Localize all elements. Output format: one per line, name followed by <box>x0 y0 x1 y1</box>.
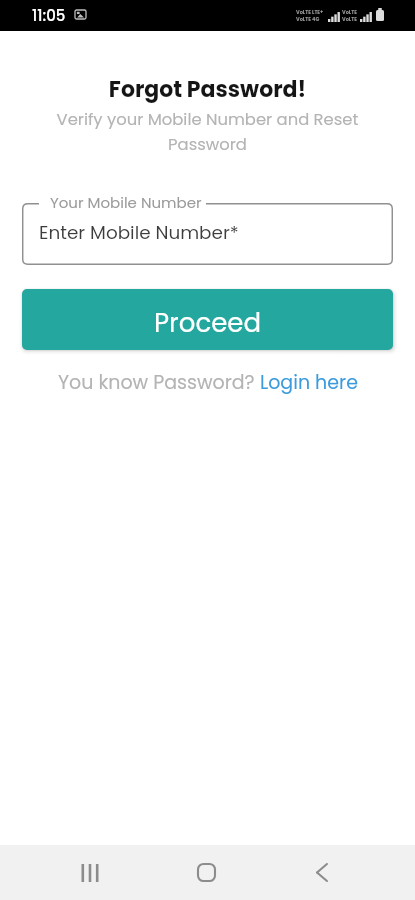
button[interactable]: Recent apps <box>62 845 118 900</box>
staticText: 4G <box>312 16 320 23</box>
staticText: Your Mobile Number <box>50 192 202 213</box>
staticText: Enter Mobile Number* <box>39 220 239 246</box>
staticText: Verify your Mobile Number and Reset Pass… <box>45 108 370 156</box>
staticText: 11:05 <box>32 5 66 26</box>
staticText: Forgot Password! <box>0 74 415 105</box>
staticText: Login here <box>260 369 358 396</box>
button[interactable]: Home <box>178 845 234 900</box>
staticText: LTE+ <box>312 9 324 16</box>
staticText: VoLTE <box>342 16 357 23</box>
staticText: VoLTE <box>296 9 311 16</box>
button[interactable]: Proceed <box>22 289 393 350</box>
button[interactable]: Back <box>294 845 350 900</box>
button[interactable]: Enter Mobile Number* <box>22 203 393 265</box>
staticText: Proceed <box>154 305 261 341</box>
staticText: VoLTE <box>296 16 311 23</box>
staticText: You know Password? <box>58 369 260 396</box>
button[interactable]: Login here <box>260 369 358 396</box>
staticText: VoLTE <box>342 9 357 16</box>
